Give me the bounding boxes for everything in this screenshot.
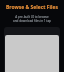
staticText: A pre-built UI to browse and download fi…	[0, 15, 64, 23]
staticText: Browse & Select Files	[0, 4, 64, 11]
